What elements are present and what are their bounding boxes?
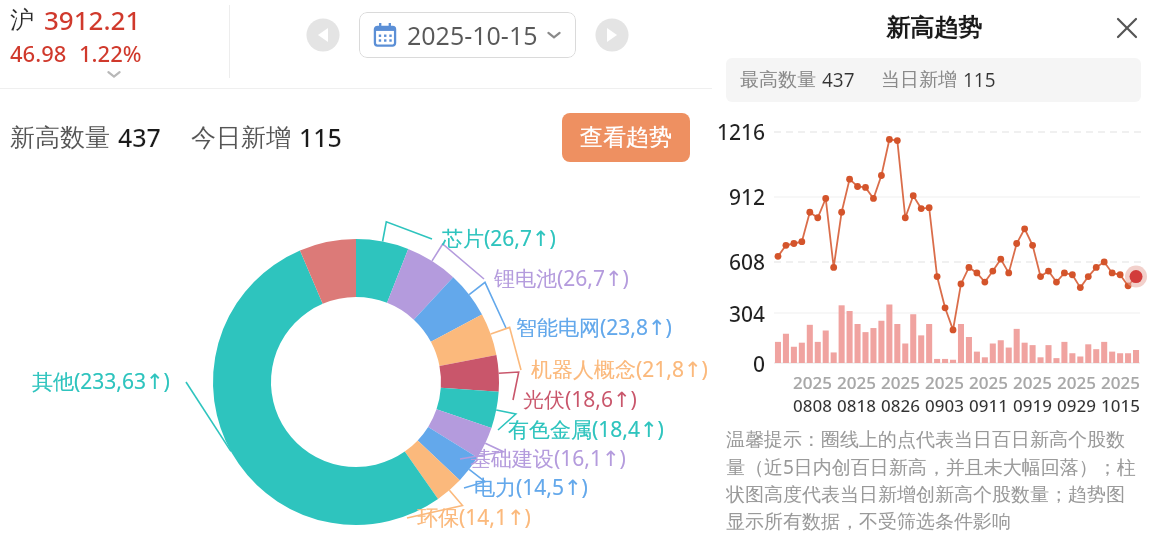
staticText: 查看趋势 bbox=[580, 123, 672, 152]
staticText: 2025 bbox=[881, 371, 920, 394]
staticText: 新高数量 bbox=[10, 122, 110, 153]
button[interactable]: 查看趋势 bbox=[562, 113, 690, 162]
staticText: 光伏(18,6↑) bbox=[523, 385, 637, 414]
staticText: 0929 bbox=[1057, 394, 1096, 417]
staticText: 0919 bbox=[1013, 394, 1052, 417]
staticText: 115 bbox=[299, 120, 342, 154]
staticText: 机器人概念(21,8↑) bbox=[531, 355, 708, 384]
staticText: 0903 bbox=[925, 394, 964, 417]
staticText: 1216 bbox=[717, 118, 766, 147]
staticText: 1015 bbox=[1101, 394, 1140, 417]
staticText: 智能电网(23,8↑) bbox=[516, 313, 672, 342]
staticText: 608 bbox=[729, 248, 766, 277]
staticText: 3912.21 bbox=[44, 2, 141, 37]
staticText: 当日新增 bbox=[881, 68, 957, 92]
staticText: 2025 bbox=[1101, 371, 1140, 394]
staticText: 912 bbox=[729, 183, 766, 212]
staticText: 锂电池(26,7↑) bbox=[494, 264, 629, 293]
staticText: 其他(233,63↑) bbox=[32, 367, 170, 396]
staticText: 有色金属(18,4↑) bbox=[508, 415, 664, 444]
staticText: 2025 bbox=[1057, 371, 1096, 394]
staticText: 最高数量 bbox=[740, 68, 816, 92]
staticText: 2025 bbox=[969, 371, 1008, 394]
staticText: 2025 bbox=[1013, 371, 1052, 394]
button[interactable]: Previous day bbox=[305, 17, 341, 53]
staticText: 新高趋势 bbox=[886, 13, 982, 43]
staticText: 115 bbox=[963, 67, 996, 93]
staticText: 温馨提示：圈线上的点代表当日百日新高个股数量（近5日内创百日新高，并且未大幅回落… bbox=[726, 428, 1141, 534]
button[interactable]: 2025-10-15 bbox=[359, 12, 576, 58]
staticText: 0808 bbox=[793, 394, 832, 417]
staticText: 2025 bbox=[837, 371, 876, 394]
staticText: 0911 bbox=[969, 394, 1008, 417]
staticText: 芯片(26,7↑) bbox=[442, 224, 556, 253]
button[interactable]: Next day bbox=[594, 17, 630, 53]
staticText: 电力(14,5↑) bbox=[474, 473, 588, 502]
staticText: 2025 bbox=[925, 371, 964, 394]
staticText: 437 bbox=[822, 67, 855, 93]
staticText: 1.22% bbox=[79, 38, 142, 68]
staticText: 今日新增 bbox=[191, 122, 291, 153]
staticText: 437 bbox=[118, 120, 161, 154]
staticText: 环保(14,1↑) bbox=[417, 503, 531, 532]
staticText: 46.98 bbox=[10, 38, 67, 68]
staticText: 0 bbox=[753, 350, 766, 379]
staticText: 2025-10-15 bbox=[407, 18, 538, 52]
staticText: 0826 bbox=[881, 394, 920, 417]
staticText: 0818 bbox=[837, 394, 876, 417]
staticText: 基础建设(16,1↑) bbox=[470, 444, 626, 473]
staticText: 2025 bbox=[793, 371, 832, 394]
staticText: 沪 bbox=[10, 5, 34, 35]
staticText: 304 bbox=[729, 300, 766, 329]
button[interactable]: Close bbox=[1107, 8, 1147, 48]
